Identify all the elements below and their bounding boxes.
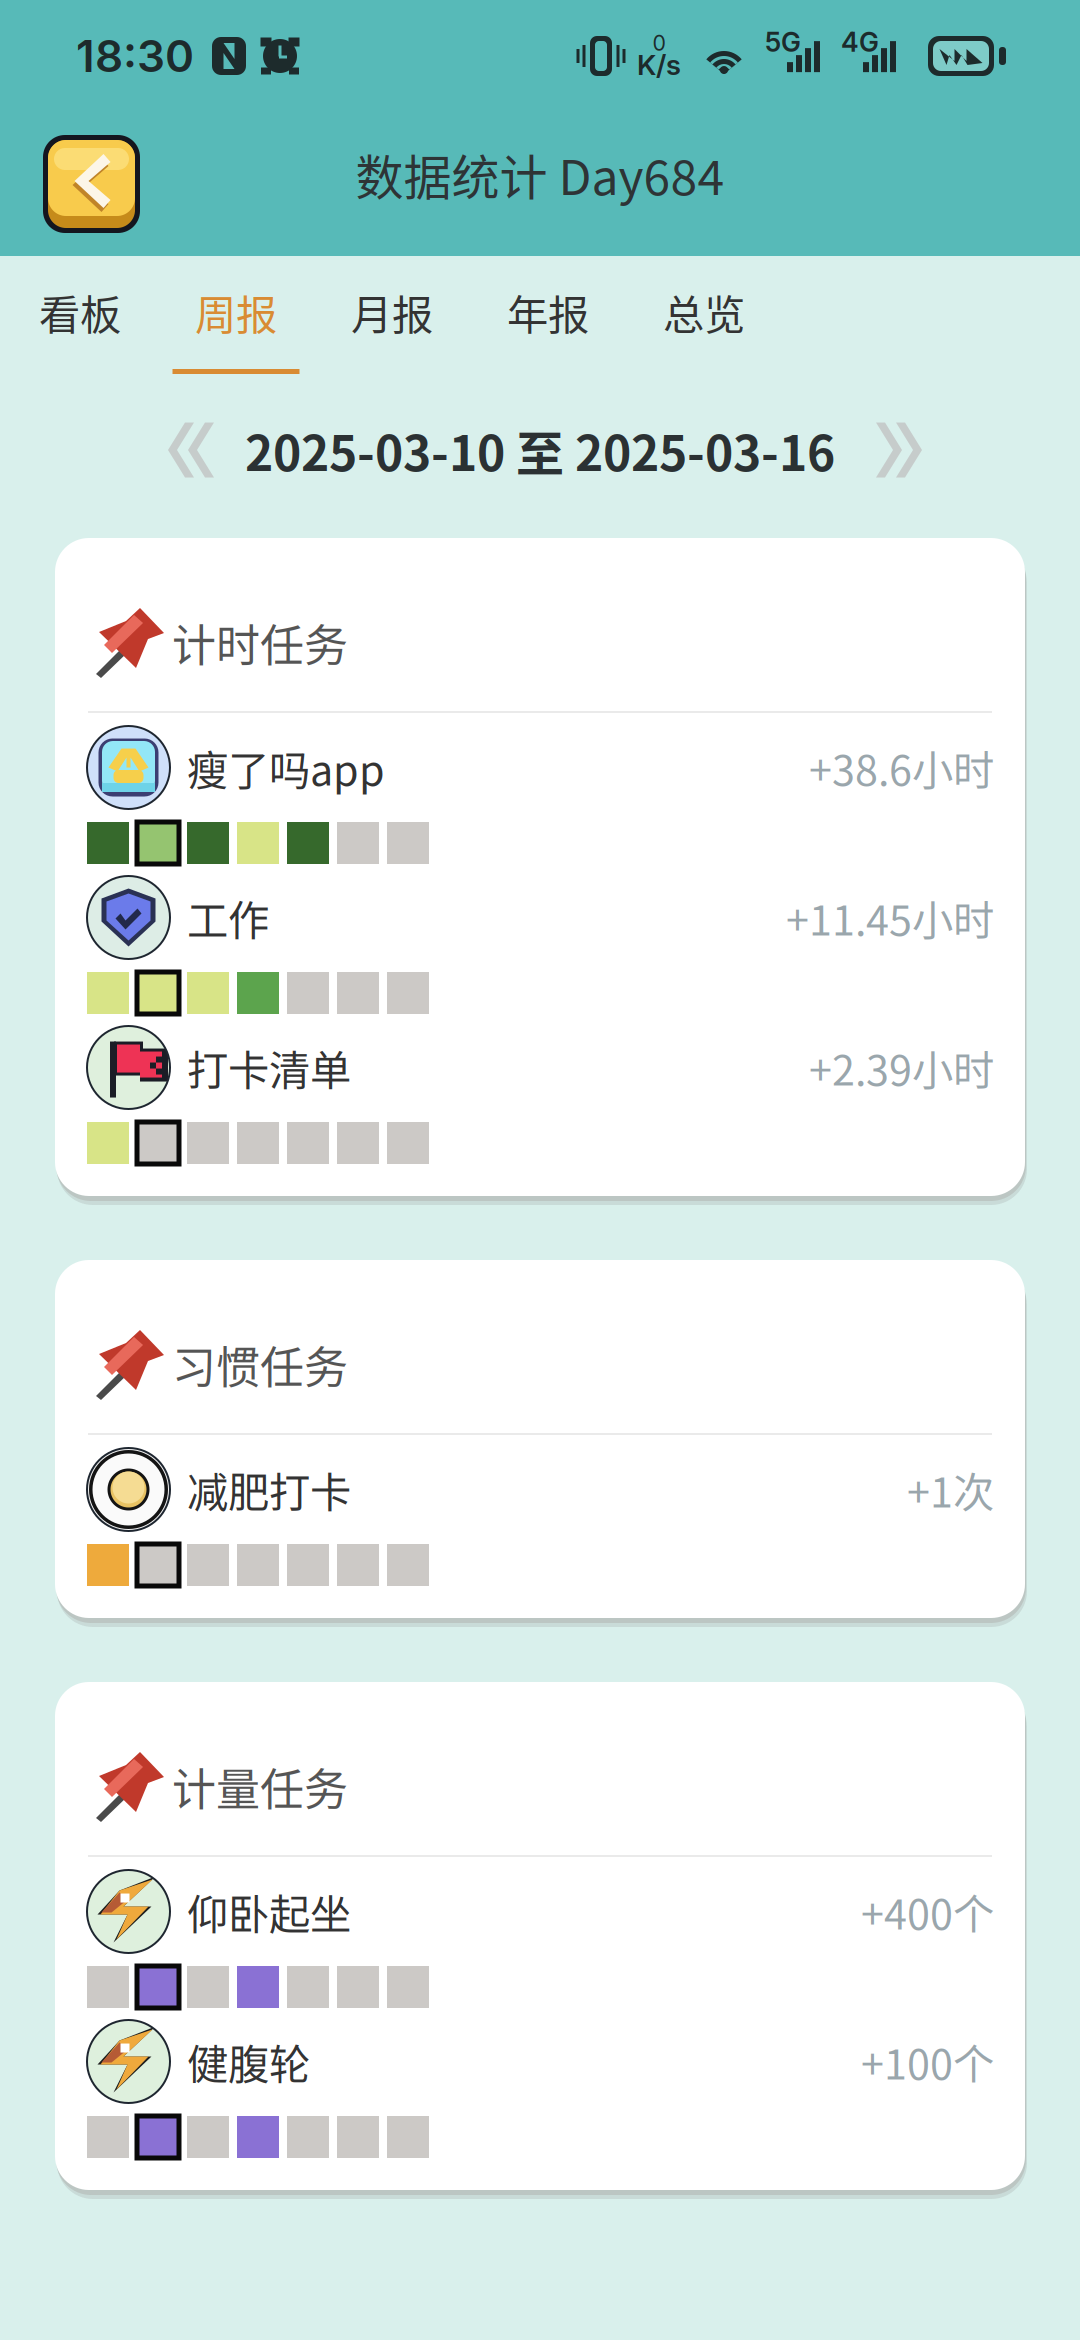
staticText: 健腹轮 — [187, 2032, 310, 2091]
button[interactable]: 下一周 — [874, 422, 914, 477]
button[interactable]: 返回 — [41, 133, 142, 235]
staticText: 数据统计 Day684 — [355, 139, 724, 209]
staticText: K/s — [637, 48, 681, 82]
button[interactable]: 减肥打卡 — [87, 1448, 994, 1598]
button[interactable]: 年报 — [470, 256, 626, 386]
staticText: 18:30 — [76, 29, 194, 83]
staticText: 计时任务 — [172, 611, 348, 674]
staticText: 看板 — [39, 282, 121, 342]
staticText: +2.39小时 — [809, 1038, 994, 1097]
staticText: +400个 — [861, 1882, 994, 1941]
staticText: 年报 — [507, 282, 589, 342]
button[interactable]: 看板 — [2, 256, 158, 386]
staticText: +38.6小时 — [809, 738, 994, 797]
button[interactable]: 瘦了吗app — [87, 726, 994, 876]
staticText: 工作 — [187, 888, 269, 947]
staticText: 4G — [841, 26, 879, 58]
staticText: 仰卧起坐 — [187, 1882, 351, 1941]
staticText: 月报 — [351, 282, 433, 342]
staticText: 周报 — [195, 282, 277, 342]
staticText: 计量任务 — [172, 1755, 348, 1818]
button[interactable]: 月报 — [314, 256, 470, 386]
button[interactable]: 总览 — [626, 256, 782, 386]
staticText: +11.45小时 — [786, 888, 994, 947]
button[interactable]: 仰卧起坐 — [87, 1870, 994, 2020]
staticText: 打卡清单 — [187, 1038, 351, 1097]
staticText: 瘦了吗app — [187, 738, 385, 797]
staticText: 5G — [765, 26, 801, 58]
staticText: 0 — [652, 30, 665, 56]
staticText: +100个 — [861, 2032, 994, 2091]
staticText: 习惯任务 — [172, 1333, 348, 1396]
staticText: 减肥打卡 — [187, 1460, 351, 1519]
button[interactable]: 健腹轮 — [87, 2020, 994, 2170]
staticText: +1次 — [907, 1460, 994, 1519]
button[interactable]: 打卡清单 — [87, 1026, 994, 1176]
staticText: 2025-03-10 至 2025-03-16 — [245, 415, 835, 485]
button[interactable]: 周报 — [158, 256, 314, 386]
staticText: 总览 — [663, 282, 745, 342]
button[interactable]: 工作 — [87, 876, 994, 1026]
button[interactable]: 上一周 — [166, 422, 206, 477]
